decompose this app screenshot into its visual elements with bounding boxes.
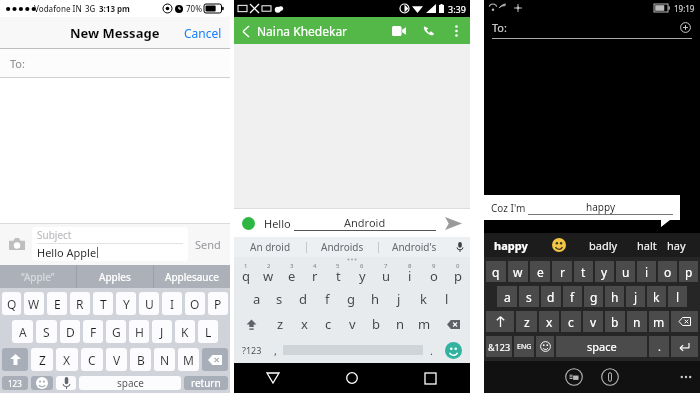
button[interactable]: Enter: [671, 336, 698, 357]
button[interactable]: Send: [442, 212, 464, 234]
button[interactable]: Emoji: [439, 337, 467, 363]
button[interactable]: hay: [667, 233, 700, 257]
button[interactable]: k: [411, 286, 435, 311]
button[interactable]: g: [584, 286, 603, 307]
button[interactable]: x: [292, 311, 316, 337]
button[interactable]: 0: [446, 261, 470, 286]
button[interactable]: Call: [419, 21, 439, 41]
button[interactable]: Emoji: [240, 215, 256, 231]
button[interactable]: Emoji: [536, 336, 554, 357]
button[interactable]: a: [245, 286, 268, 311]
button[interactable]: c: [316, 311, 340, 337]
button[interactable]: More options: [447, 22, 465, 40]
button[interactable]: Video call: [389, 21, 409, 41]
button[interactable]: F: [83, 320, 103, 343]
button[interactable]: w: [508, 261, 528, 282]
button[interactable]: D: [60, 320, 80, 343]
button[interactable]: Q: [2, 292, 21, 315]
button[interactable]: E: [47, 292, 67, 315]
button[interactable]: q: [486, 261, 506, 282]
button[interactable]: Attach: [599, 366, 621, 388]
button[interactable]: k: [647, 286, 666, 307]
button[interactable]: 3: [280, 261, 303, 286]
button[interactable]: Hello: [264, 215, 436, 231]
button[interactable]: To:: [0, 49, 230, 77]
button[interactable]: M: [178, 348, 199, 371]
button[interactable]: b: [605, 311, 625, 332]
button[interactable]: m: [412, 311, 436, 337]
button[interactable]: p: [679, 261, 698, 282]
button[interactable]: An droid: [234, 237, 306, 257]
button[interactable]: Applesauce: [154, 265, 230, 288]
button[interactable]: 2: [257, 261, 280, 286]
button[interactable]: t: [574, 261, 593, 282]
button[interactable]: V: [106, 348, 127, 371]
button[interactable]: l: [668, 286, 687, 307]
button[interactable]: Send: [192, 231, 224, 258]
button[interactable]: Emoji suggestion: [537, 233, 580, 257]
button[interactable]: Shift: [486, 311, 514, 332]
button[interactable]: m: [649, 311, 669, 332]
button[interactable]: X: [56, 348, 78, 371]
button[interactable]: return: [184, 376, 228, 390]
button[interactable]: z: [268, 311, 292, 337]
button[interactable]: “Apple”: [0, 265, 76, 288]
button[interactable]: T: [93, 292, 113, 315]
button[interactable]: K: [175, 320, 195, 343]
button[interactable]: Back: [239, 24, 253, 38]
button[interactable]: d: [291, 286, 315, 311]
button[interactable]: v: [583, 311, 603, 332]
button[interactable]: H: [129, 320, 149, 343]
button[interactable]: N: [154, 348, 175, 371]
button[interactable]: 5: [326, 261, 350, 286]
button[interactable]: r: [552, 261, 572, 282]
button[interactable]: W: [24, 292, 44, 315]
button[interactable]: e: [530, 261, 550, 282]
button[interactable]: x: [539, 311, 559, 332]
button[interactable]: s: [268, 286, 291, 311]
button[interactable]: l: [435, 286, 459, 311]
button[interactable]: 1: [234, 261, 257, 286]
button[interactable]: U: [139, 292, 159, 315]
button[interactable]: a: [497, 286, 517, 307]
button[interactable]: b: [364, 311, 388, 337]
button[interactable]: space: [556, 336, 647, 357]
button[interactable]: Emoji: [31, 376, 53, 390]
button[interactable]: J: [152, 320, 172, 343]
button[interactable]: Voice input: [450, 237, 470, 257]
button[interactable]: j: [626, 286, 645, 307]
button[interactable]: Camera: [6, 233, 28, 255]
button[interactable]: Add contact: [678, 20, 692, 34]
button[interactable]: f: [563, 286, 582, 307]
button[interactable]: G: [106, 320, 126, 343]
button[interactable]: To:: [492, 16, 692, 38]
button[interactable]: h: [363, 286, 387, 311]
button[interactable]: u: [616, 261, 635, 282]
button[interactable]: Backspace: [671, 311, 698, 332]
button[interactable]: 4: [303, 261, 326, 286]
button[interactable]: f: [315, 286, 339, 311]
button[interactable]: ENG: [514, 336, 534, 357]
button[interactable]: halt: [627, 233, 667, 257]
button[interactable]: n: [627, 311, 647, 332]
button[interactable]: d: [541, 286, 561, 307]
button[interactable]: O: [185, 292, 205, 315]
button[interactable]: .: [649, 336, 669, 357]
button[interactable]: h: [605, 286, 624, 307]
button[interactable]: 6: [350, 261, 374, 286]
button[interactable]: P: [208, 292, 228, 315]
button[interactable]: i: [637, 261, 656, 282]
button[interactable]: Send message: [563, 366, 585, 388]
button[interactable]: z: [516, 311, 537, 332]
button[interactable]: g: [339, 286, 363, 311]
button[interactable]: o: [658, 261, 677, 282]
button[interactable]: 123: [2, 376, 28, 390]
button[interactable]: 7: [374, 261, 398, 286]
button[interactable]: s: [519, 286, 539, 307]
button[interactable]: y: [595, 261, 614, 282]
button[interactable]: happy: [484, 233, 537, 257]
button[interactable]: Cancel: [176, 19, 230, 47]
button[interactable]: Z: [31, 348, 53, 371]
button[interactable]: Home: [312, 363, 391, 393]
button[interactable]: Back: [234, 363, 312, 393]
